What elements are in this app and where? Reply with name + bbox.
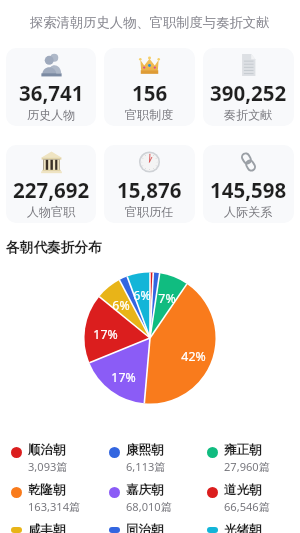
staticText: 康熙朝: [126, 442, 164, 458]
staticText: 官职制度: [125, 107, 174, 122]
staticText: 官职历任: [125, 204, 174, 219]
staticText: 36,741: [19, 79, 84, 107]
button[interactable]: 康熙朝: [101, 442, 199, 474]
button[interactable]: 同治朝: [101, 522, 199, 533]
staticText: 227,692: [13, 176, 90, 204]
staticText: 68,010篇: [126, 499, 172, 514]
staticText: 咸丰朝: [28, 522, 66, 533]
staticText: 7%: [158, 290, 176, 307]
staticText: 各朝代奏折分布: [6, 239, 102, 256]
button[interactable]: Crown: [104, 48, 195, 126]
button[interactable]: Institution: [6, 145, 96, 223]
button[interactable]: People: [6, 48, 96, 126]
button[interactable]: Link: [203, 145, 294, 223]
staticText: 66,546篇: [224, 499, 270, 514]
staticText: 17%: [111, 369, 136, 386]
staticText: 奏折文献: [224, 107, 273, 122]
staticText: 145,598: [210, 176, 287, 204]
staticText: 156: [132, 79, 168, 107]
button[interactable]: 咸丰朝: [3, 522, 101, 533]
staticText: 6%: [112, 297, 130, 314]
staticText: 3,093篇: [28, 459, 68, 474]
other: Link: [237, 149, 260, 175]
staticText: 人物官职: [27, 204, 76, 219]
other: Document: [237, 52, 260, 78]
other: People: [40, 52, 63, 78]
staticText: 390,252: [210, 79, 287, 107]
staticText: 探索清朝历史人物、官职制度与奏折文献: [30, 14, 270, 31]
button[interactable]: 顺治朝: [3, 442, 101, 474]
button[interactable]: 道光朝: [199, 482, 297, 514]
staticText: 嘉庆朝: [126, 482, 164, 498]
staticText: 顺治朝: [28, 442, 66, 458]
staticText: 道光朝: [224, 482, 262, 498]
staticText: 乾隆朝: [28, 482, 66, 498]
staticText: 历史人物: [27, 107, 76, 122]
staticText: 27,960篇: [224, 459, 270, 474]
button[interactable]: 乾隆朝: [3, 482, 101, 514]
other: Clock: [138, 149, 161, 175]
staticText: 同治朝: [126, 522, 164, 533]
staticText: 雍正朝: [224, 442, 262, 458]
staticText: 42%: [181, 348, 206, 365]
staticText: 17%: [93, 326, 118, 343]
other: Institution: [40, 149, 63, 175]
staticText: 6%: [133, 287, 151, 304]
button[interactable]: 嘉庆朝: [101, 482, 199, 514]
button[interactable]: Document: [203, 48, 294, 126]
button[interactable]: 光绪朝: [199, 522, 297, 533]
staticText: 人际关系: [224, 204, 273, 219]
other: Crown: [138, 52, 161, 78]
button[interactable]: Clock: [104, 145, 195, 223]
staticText: 光绪朝: [224, 522, 262, 533]
staticText: 6,113篇: [126, 459, 166, 474]
staticText: 163,314篇: [28, 499, 81, 514]
button[interactable]: 雍正朝: [199, 442, 297, 474]
staticText: 15,876: [117, 176, 182, 204]
